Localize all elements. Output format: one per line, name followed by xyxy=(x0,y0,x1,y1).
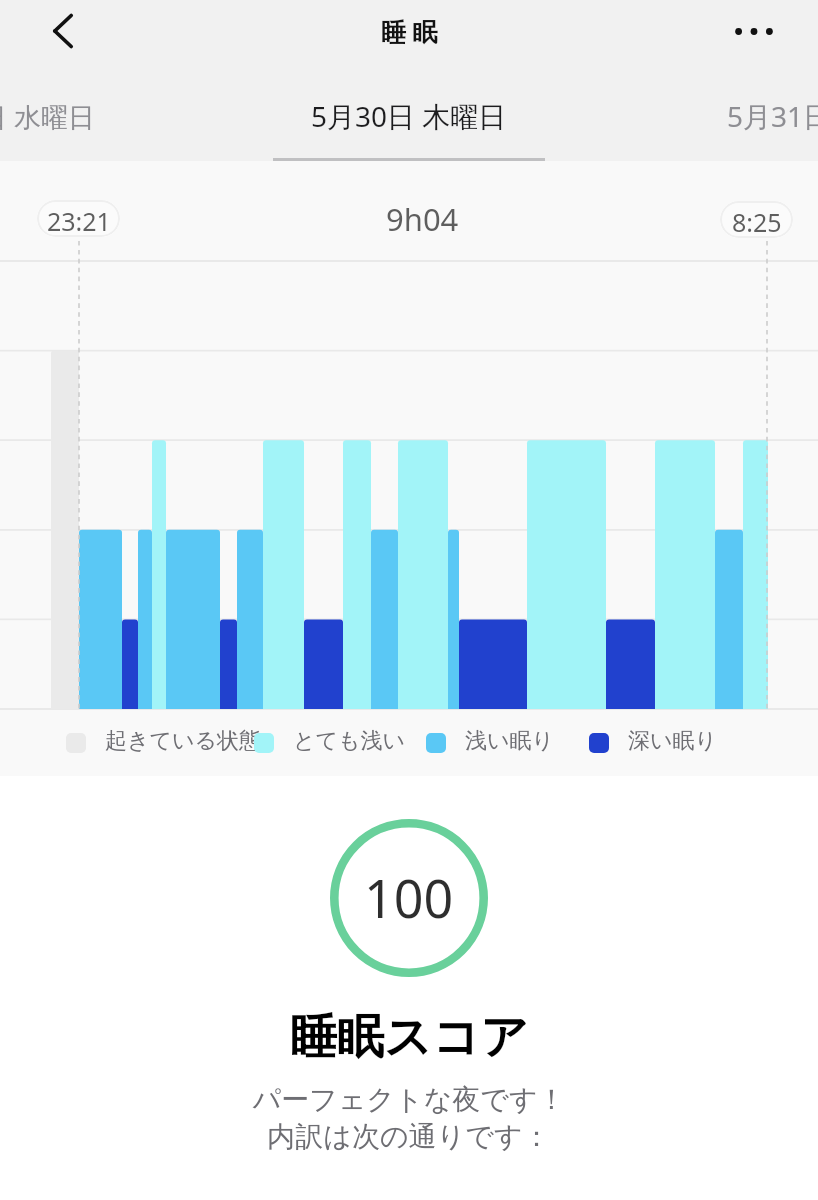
button[interactable]: 日 水曜日 xyxy=(0,92,96,140)
staticText: 起きている状態 xyxy=(105,727,262,755)
staticText: 睡眠スコア xyxy=(290,1008,529,1067)
staticText: 睡 眠 xyxy=(381,14,438,48)
button[interactable]: 5月31日 xyxy=(727,97,818,135)
staticText: 5月31日 xyxy=(727,97,818,135)
button[interactable]: 起きている状態 xyxy=(66,727,264,759)
staticText: 8:25 xyxy=(732,205,782,238)
button[interactable]: 深い眠り xyxy=(589,727,717,759)
staticText: 23:21 xyxy=(47,204,111,237)
button[interactable]: 8:25 xyxy=(720,201,793,238)
staticText: 100 xyxy=(364,862,454,933)
staticText: 深い眠り xyxy=(628,727,718,755)
button[interactable]: 浅い眠り xyxy=(426,727,554,759)
button[interactable]: 23:21 xyxy=(37,200,120,237)
staticText: 日 水曜日 xyxy=(0,98,96,135)
staticText: とても浅い xyxy=(293,727,406,755)
button[interactable]: 5月30日 木曜日 xyxy=(0,92,818,140)
staticText: 9h04 xyxy=(386,198,459,240)
button[interactable]: Back xyxy=(35,3,91,59)
staticText: パーフェクトな夜です！ 内訳は次の通りです： xyxy=(252,1082,566,1154)
button[interactable]: とても浅い xyxy=(254,727,408,759)
button[interactable]: More options xyxy=(726,3,782,59)
staticText: 5月30日 木曜日 xyxy=(311,97,507,135)
staticText: 浅い眠り xyxy=(465,727,555,755)
